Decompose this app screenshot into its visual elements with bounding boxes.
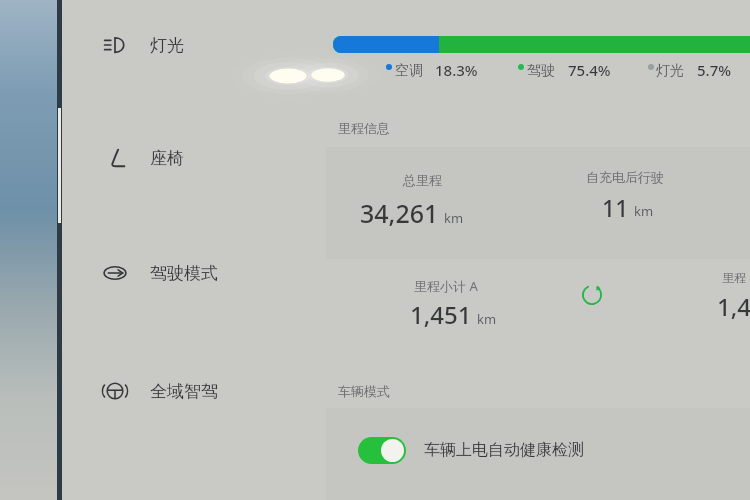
staticText: km — [477, 310, 497, 328]
staticText: 18.3% — [435, 60, 478, 80]
staticText: 5.7% — [697, 60, 732, 80]
staticText: 总里程 — [403, 172, 442, 188]
button[interactable]: 灯光 — [62, 22, 277, 68]
staticText: 座椅 — [150, 148, 184, 169]
staticText: 11 — [602, 192, 629, 223]
staticText: km — [444, 209, 464, 227]
staticText: 里程小计 A — [414, 277, 478, 295]
button[interactable]: 车辆上电自动健康检测 — [350, 428, 592, 472]
staticText: 1,451 — [410, 298, 472, 331]
staticText: 里程 — [722, 270, 746, 285]
staticText: 灯光 — [656, 62, 684, 80]
button[interactable]: 重置里程小计 — [575, 278, 609, 312]
staticText: km — [634, 202, 654, 220]
staticText: 自充电后行驶 — [586, 169, 664, 185]
staticText: 车辆模式 — [338, 383, 390, 399]
staticText: 驾驶 — [527, 62, 555, 80]
staticText: 1,45 — [717, 290, 750, 323]
staticText: 34,261 — [360, 196, 439, 230]
button[interactable]: 座椅 — [62, 135, 277, 181]
staticText: 驾驶模式 — [150, 263, 218, 284]
staticText: 灯光 — [150, 35, 184, 56]
staticText: 空调 — [395, 62, 423, 80]
staticText: 全域智驾 — [150, 381, 218, 402]
button[interactable]: 全域智驾 — [62, 368, 277, 414]
button[interactable]: 驾驶模式 — [62, 250, 277, 296]
staticText: 车辆上电自动健康检测 — [424, 440, 584, 460]
staticText: 里程信息 — [338, 120, 390, 136]
staticText: 75.4% — [568, 60, 611, 80]
